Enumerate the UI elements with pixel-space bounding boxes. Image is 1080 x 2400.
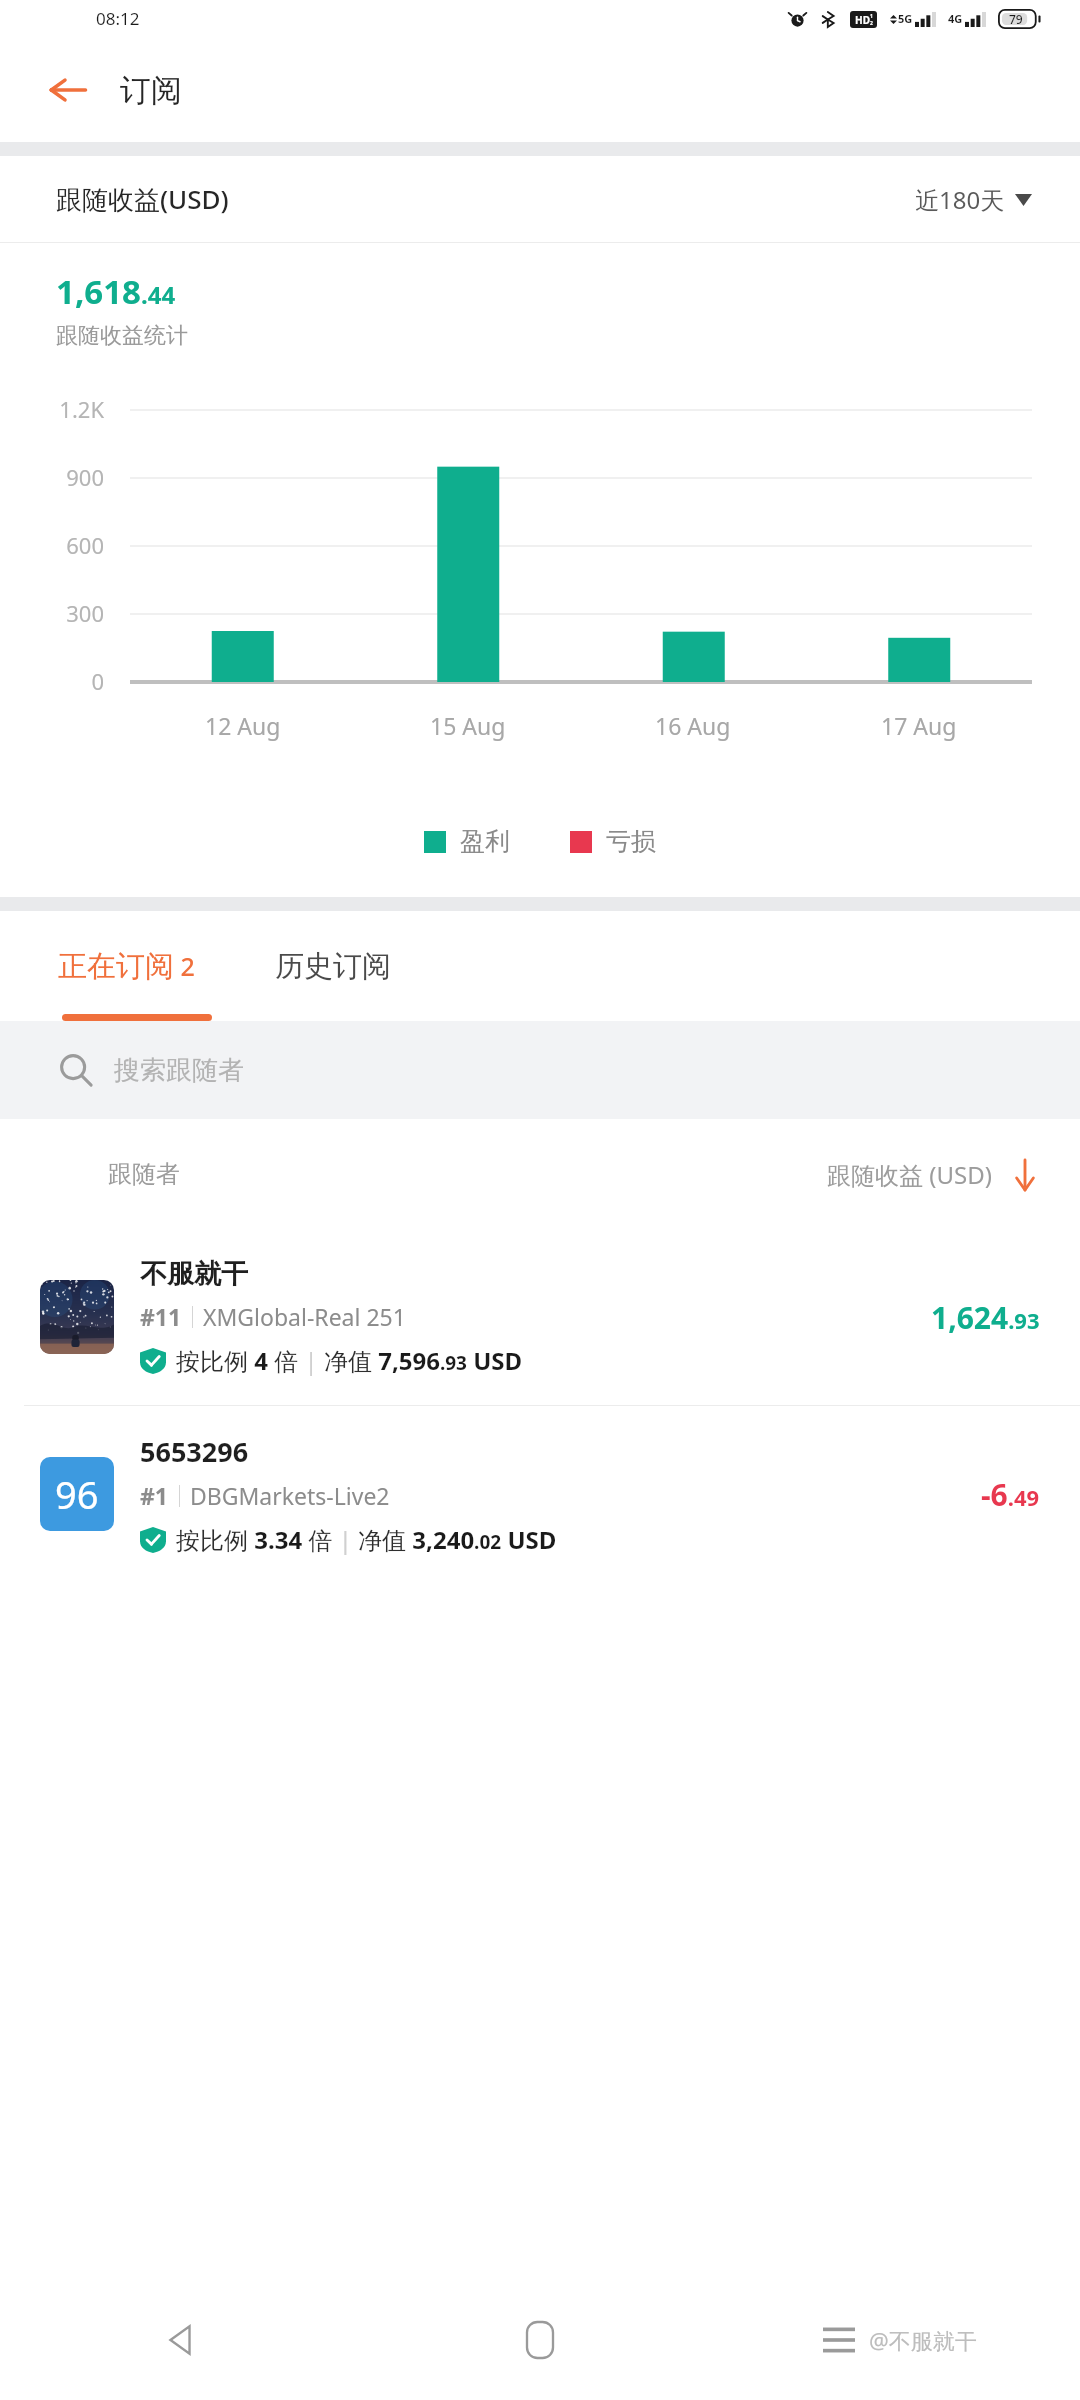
staticText: HD: [855, 13, 870, 27]
staticText: @不服就干: [869, 2325, 977, 2355]
staticText: 历史订阅: [275, 948, 391, 985]
staticText: 跟随收益 (USD): [827, 1158, 992, 1191]
staticText: 2: [870, 20, 873, 27]
button[interactable]: Home: [360, 2280, 720, 2400]
staticText: 79: [1009, 11, 1023, 27]
button[interactable]: Recents: [720, 2280, 1080, 2400]
button[interactable]: 96: [0, 1406, 1080, 1582]
staticText: #11: [140, 1301, 182, 1332]
staticText: 跟随者: [108, 1159, 180, 1189]
staticText: 4G: [948, 11, 963, 26]
staticText: 96: [55, 1468, 99, 1520]
staticText: 300: [0, 598, 104, 628]
staticText: DBGMarkets-Live2: [190, 1480, 390, 1511]
staticText: 0: [0, 666, 104, 696]
staticText: 16 Aug: [655, 710, 731, 741]
staticText: 近180天: [915, 183, 1005, 216]
other: Sort descending: [1014, 1160, 1036, 1190]
staticText: 不服就干: [140, 1257, 248, 1291]
button[interactable]: Back: [0, 2280, 360, 2400]
staticText: 正在订阅 2: [58, 948, 195, 985]
button[interactable]: 历史订阅: [257, 932, 409, 1001]
staticText: 12 Aug: [205, 710, 281, 741]
staticText: 600: [0, 530, 104, 560]
staticText: 按比例 3.34 倍 | 净值 3,240.02 USD: [176, 1523, 557, 1556]
staticText: 亏损: [606, 826, 656, 857]
button[interactable]: 搜索跟随者: [0, 1021, 1080, 1119]
staticText: 1,618.44: [56, 269, 176, 314]
staticText: 1: [870, 13, 873, 20]
staticText: 搜索跟随者: [114, 1054, 244, 1087]
staticText: #1: [140, 1480, 169, 1511]
staticText: 900: [0, 462, 104, 492]
button[interactable]: 正在订阅 2: [40, 932, 213, 1001]
staticText: -6.49: [981, 1474, 1040, 1515]
staticText: 订阅: [120, 71, 182, 110]
staticText: 跟随收益统计: [56, 322, 188, 350]
staticText: 跟随收益(USD): [56, 181, 229, 217]
button[interactable]: Back: [40, 62, 96, 118]
staticText: 5653296: [140, 1433, 249, 1470]
button[interactable]: 不服就干: [0, 1229, 1080, 1405]
staticText: 1,624.93: [931, 1297, 1040, 1338]
button[interactable]: 跟随收益 (USD): [827, 1158, 1036, 1191]
staticText: 1.2K: [0, 394, 104, 424]
staticText: 盈利: [460, 826, 510, 857]
staticText: 17 Aug: [881, 710, 957, 741]
staticText: 5G: [898, 11, 913, 26]
staticText: 15 Aug: [430, 710, 506, 741]
staticText: 08:12: [96, 7, 140, 30]
staticText: 按比例 4 倍 | 净值 7,596.93 USD: [176, 1344, 523, 1377]
button[interactable]: 近180天: [915, 183, 1032, 216]
staticText: XMGlobal-Real 251: [203, 1301, 406, 1332]
